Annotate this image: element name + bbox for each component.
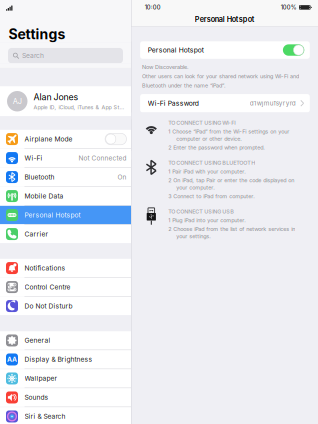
- button[interactable]: Airplane Mode: [0, 130, 131, 148]
- staticText: Bluetooth: [24, 173, 54, 181]
- button[interactable]: Personal Hotspot: [0, 206, 131, 224]
- button[interactable]: Sounds: [0, 388, 131, 407]
- staticText: 2 Enter the password when prompted.: [168, 144, 265, 151]
- staticText: Bluetooth under the name “iPad”.: [142, 82, 226, 89]
- staticText: 2 On iPad, tap Pair or enter the code di…: [168, 177, 294, 184]
- staticText: Airplane Mode: [24, 135, 72, 143]
- button[interactable]: Wallpaper: [0, 369, 131, 388]
- staticText: your computer.: [168, 184, 215, 191]
- staticText: Display & Brightness: [24, 355, 92, 363]
- staticText: 3 Connect to iPad from computer.: [168, 193, 255, 200]
- staticText: 10:00: [145, 4, 161, 11]
- button[interactable]: AJ: [0, 86, 131, 116]
- staticText: Notifications: [24, 264, 65, 272]
- staticText: Personal Hotspot: [195, 15, 255, 24]
- staticText: 1 Pair iPad with your computer.: [168, 168, 246, 175]
- staticText: TO CONNECT USING WI-FI: [168, 119, 235, 126]
- button[interactable]: Siri & Search: [0, 407, 131, 424]
- staticText: 100%: [281, 4, 297, 11]
- staticText: Alan Jones: [33, 92, 78, 102]
- button[interactable]: Personal Hotspot: [283, 44, 304, 56]
- staticText: Other users can look for your shared net…: [142, 73, 299, 80]
- staticText: Personal Hotspot: [148, 46, 204, 54]
- staticText: Now Discoverable.: [142, 64, 189, 70]
- staticText: On: [117, 173, 126, 181]
- staticText: Wi-Fi Password: [148, 99, 199, 107]
- button[interactable]: Bluetooth: [0, 168, 131, 186]
- staticText: Apple ID, iCloud, iTunes & App St…: [33, 104, 124, 111]
- button[interactable]: Notifications: [0, 259, 131, 277]
- button[interactable]: Carrier: [0, 225, 131, 243]
- staticText: Sounds: [24, 393, 48, 401]
- staticText: Mobile Data: [24, 192, 63, 200]
- button[interactable]: Do Not Disturb: [0, 297, 131, 315]
- button[interactable]: General: [0, 331, 131, 350]
- staticText: 2 Choose iPad from the list of network s…: [168, 226, 295, 232]
- staticText: Wi-Fi: [24, 154, 42, 162]
- staticText: 1 Choose “iPad” from the Wi-Fi settings …: [168, 128, 289, 135]
- staticText: AA: [7, 355, 17, 363]
- staticText: Do Not Disturb: [24, 302, 72, 310]
- button[interactable]: Control Centre: [0, 278, 131, 296]
- staticText: TO CONNECT USING BLUETOOTH: [168, 159, 255, 166]
- button[interactable]: AA: [0, 350, 131, 369]
- staticText: Search: [22, 52, 44, 60]
- staticText: General: [24, 336, 50, 344]
- staticText: AJ: [13, 97, 22, 106]
- staticText: d1wjmufsyryrd: [250, 99, 296, 107]
- staticText: Control Centre: [24, 283, 70, 291]
- staticText: Personal Hotspot: [24, 211, 80, 219]
- button[interactable]: Wi-Fi: [0, 149, 131, 167]
- staticText: Not Connected: [78, 154, 126, 162]
- staticText: Wallpaper: [24, 374, 57, 382]
- staticText: Carrier: [24, 230, 48, 238]
- staticText: your settings.: [168, 233, 211, 240]
- button[interactable]: Wi-Fi Password: [132, 94, 318, 112]
- staticText: 1 Plug iPad into your computer.: [168, 217, 246, 224]
- button[interactable]: Mobile Data: [0, 187, 131, 205]
- staticText: Settings: [8, 26, 65, 42]
- staticText: computer or other device.: [168, 135, 242, 142]
- staticText: Siri & Search: [24, 412, 65, 420]
- staticText: TO CONNECT USING USB: [168, 208, 234, 215]
